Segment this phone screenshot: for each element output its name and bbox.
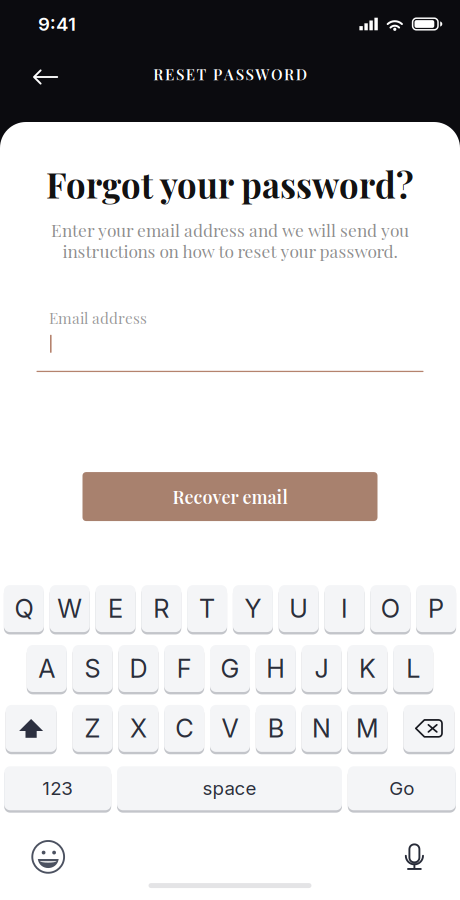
button[interactable]: Go: [348, 766, 456, 813]
staticText: S: [85, 653, 101, 684]
staticText: I: [341, 593, 348, 624]
staticText: P: [428, 593, 444, 624]
button[interactable]: 123: [4, 766, 111, 813]
button[interactable]: Dictation: [383, 837, 443, 877]
button[interactable]: S: [73, 645, 113, 694]
button[interactable]: F: [164, 645, 204, 694]
button[interactable]: B: [256, 705, 296, 754]
staticText: space: [202, 777, 256, 800]
staticText: K: [359, 653, 376, 684]
button[interactable]: K: [347, 645, 387, 694]
staticText: Q: [14, 593, 33, 624]
button[interactable]: O: [370, 585, 410, 634]
button[interactable]: M: [347, 705, 387, 754]
button[interactable]: C: [164, 705, 204, 754]
staticText: D: [129, 653, 147, 684]
staticText: C: [175, 713, 193, 744]
staticText: Email address: [49, 307, 147, 328]
staticText: E: [108, 593, 123, 624]
button[interactable]: Z: [73, 705, 113, 754]
staticText: F: [177, 653, 192, 684]
button[interactable]: Shift: [6, 705, 57, 754]
staticText: R: [153, 593, 169, 624]
staticText: M: [356, 713, 379, 744]
button[interactable]: Q: [4, 585, 44, 634]
staticText: A: [38, 653, 55, 684]
staticText: W: [57, 593, 82, 624]
staticText: X: [130, 713, 147, 744]
staticText: RESET PASSWORD: [153, 64, 307, 84]
button[interactable]: X: [118, 705, 158, 754]
staticText: Z: [85, 713, 101, 744]
button[interactable]: Y: [233, 585, 273, 634]
button[interactable]: E: [95, 585, 135, 634]
button[interactable]: D: [118, 645, 158, 694]
button[interactable]: Back: [19, 53, 72, 95]
button[interactable]: N: [302, 705, 342, 754]
button[interactable]: J: [302, 645, 342, 694]
button[interactable]: T: [187, 585, 227, 634]
staticText: Forgot your password?: [46, 161, 414, 207]
button[interactable]: L: [393, 645, 433, 694]
button[interactable]: Delete: [403, 705, 454, 754]
button[interactable]: V: [210, 705, 250, 754]
button[interactable]: I: [324, 585, 364, 634]
staticText: B: [268, 713, 284, 744]
button[interactable]: A: [27, 645, 67, 694]
button[interactable]: W: [50, 585, 90, 634]
staticText: H: [266, 653, 285, 684]
button[interactable]: Recover email: [82, 472, 377, 521]
staticText: T: [199, 593, 215, 624]
button[interactable]: G: [210, 645, 250, 694]
button[interactable]: space: [117, 766, 342, 813]
button[interactable]: P: [416, 585, 456, 634]
staticText: Recover email: [172, 485, 287, 508]
staticText: O: [381, 593, 400, 624]
staticText: Go: [389, 777, 414, 800]
staticText: instructions on how to reset your passwo…: [62, 239, 397, 262]
button[interactable]: H: [256, 645, 296, 694]
staticText: 123: [42, 777, 73, 800]
button[interactable]: R: [141, 585, 181, 634]
button[interactable]: Emoji keyboard: [17, 837, 79, 877]
staticText: L: [406, 653, 420, 684]
staticText: J: [315, 653, 329, 684]
staticText: V: [221, 713, 238, 744]
staticText: N: [312, 713, 331, 744]
staticText: Y: [244, 593, 261, 624]
staticText: U: [289, 593, 308, 624]
staticText: G: [220, 653, 239, 684]
staticText: Enter your email address and we will sen…: [51, 218, 409, 241]
button[interactable]: U: [279, 585, 319, 634]
staticText: 9:41: [38, 13, 76, 35]
